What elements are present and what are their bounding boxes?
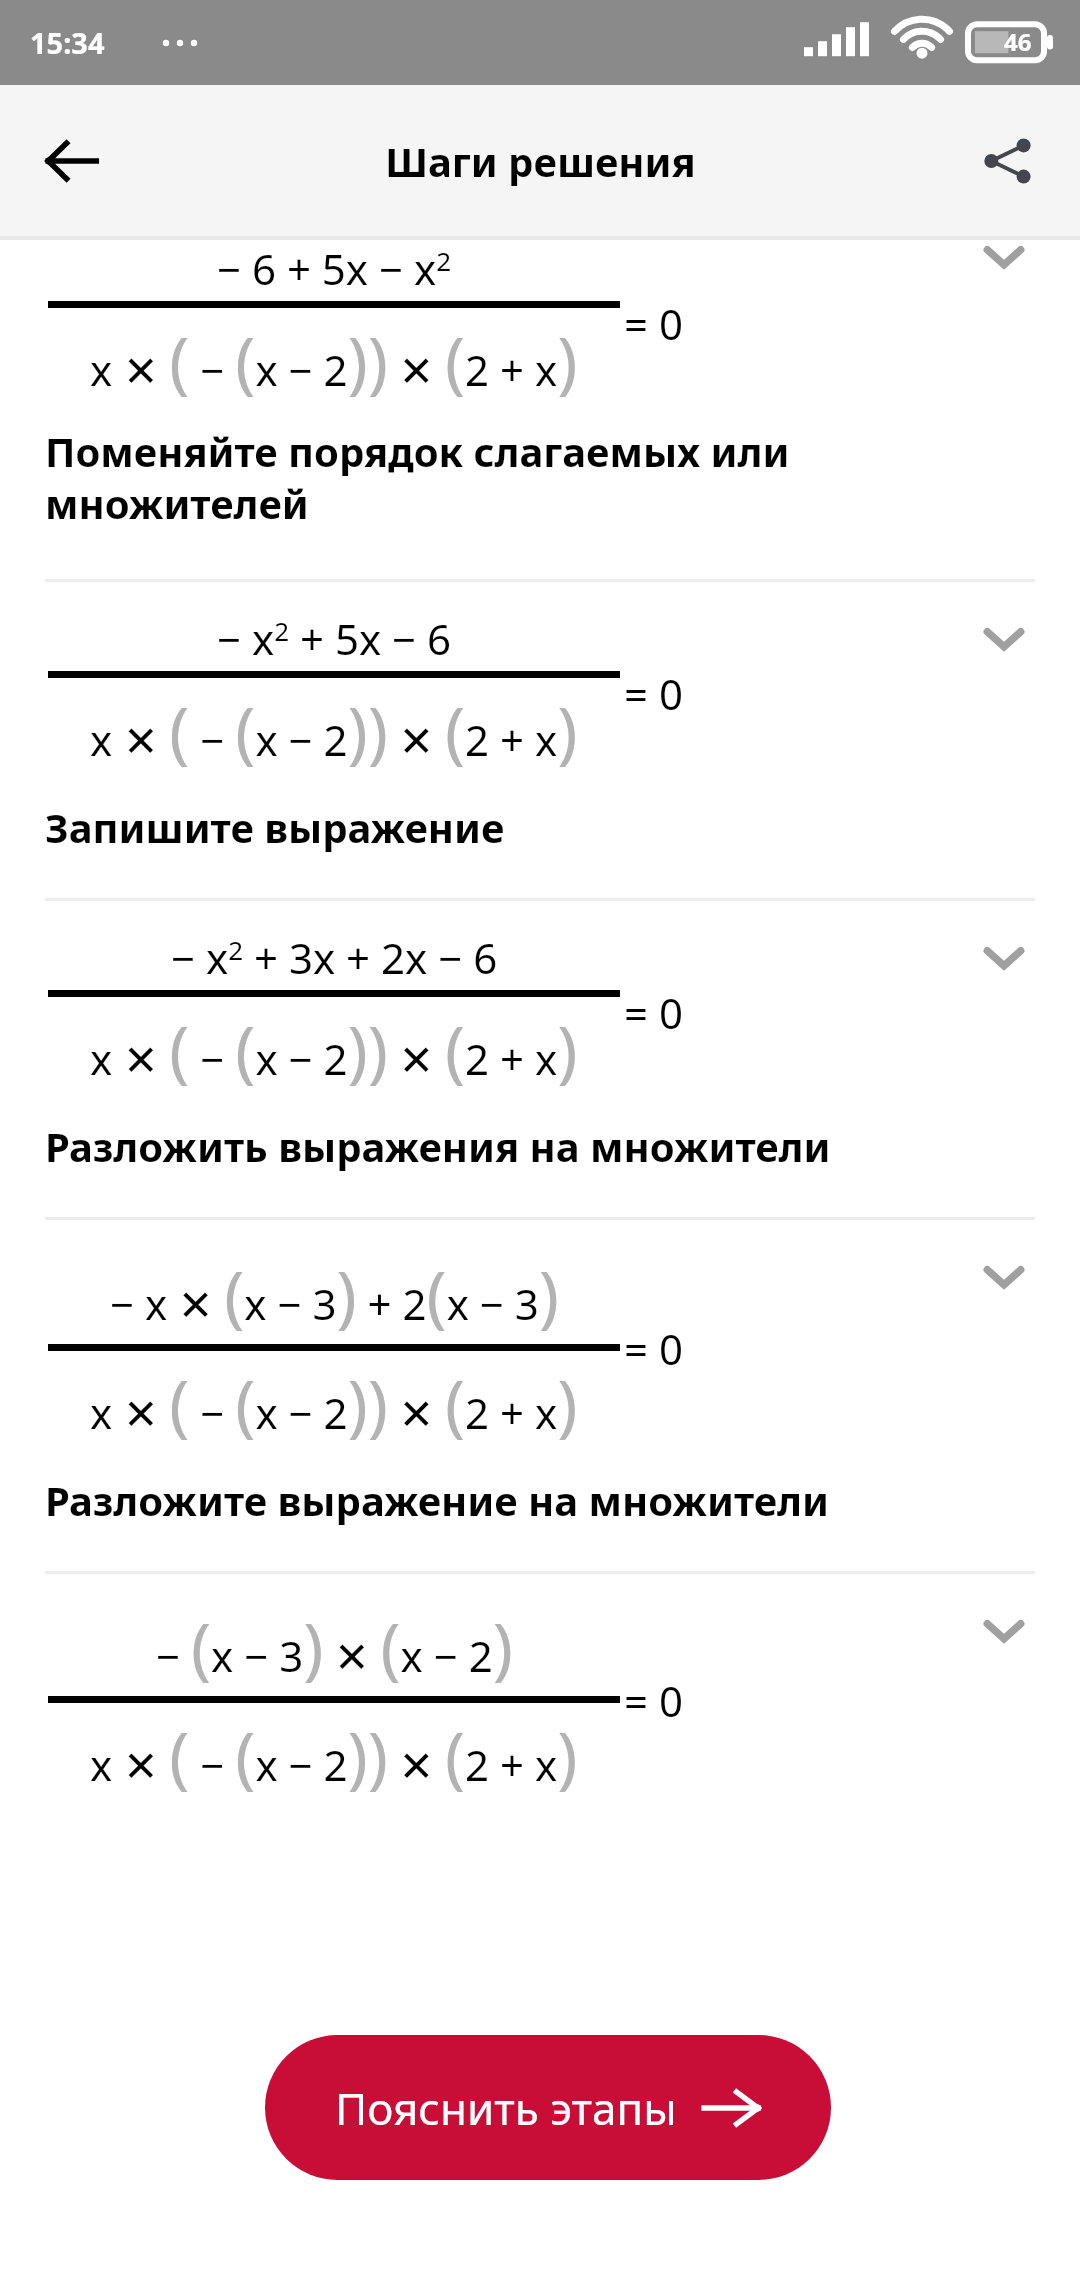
staticText: Запишите выражение xyxy=(45,800,505,854)
staticText: Разложите выражение на множители xyxy=(45,1473,829,1527)
staticText: − x2 + 3x + 2x − 6 xyxy=(171,929,498,986)
staticText: − (x − 3) ✕ (x − 2) xyxy=(156,1600,513,1692)
staticText: x ✕ ( − (x − 2)) ✕ (2 + x) xyxy=(90,1003,578,1095)
button[interactable]: Share xyxy=(962,115,1054,207)
staticText: Разложить выражения на множители xyxy=(45,1119,831,1173)
staticText: = 0 xyxy=(624,295,683,352)
staticText: − 6 + 5x − x2 xyxy=(217,240,452,297)
staticText: Пояснить этапы xyxy=(335,2078,677,2138)
staticText: = 0 xyxy=(624,1672,683,1729)
staticText: = 0 xyxy=(624,1320,683,1377)
button[interactable]: Пояснить этапы xyxy=(265,2035,831,2180)
staticText: Шаги решения xyxy=(385,134,696,188)
staticText: − x ✕ (x − 3) + 2(x − 3) xyxy=(110,1248,559,1340)
button[interactable]: Back xyxy=(26,115,118,207)
staticText: 15:34 xyxy=(30,23,105,62)
button[interactable]: − x ✕ (x − 3) + 2(x − 3) xyxy=(0,1220,1080,1574)
staticText: = 0 xyxy=(624,984,683,1041)
button[interactable]: − 6 + 5x − x2 xyxy=(0,240,1080,582)
button[interactable]: − (x − 3) ✕ (x − 2) xyxy=(48,1600,683,1801)
button[interactable]: − x2 + 5x − 6 xyxy=(0,582,1080,901)
staticText: x ✕ ( − (x − 2)) ✕ (2 + x) xyxy=(90,684,578,776)
staticText: 46 xyxy=(1004,25,1032,58)
staticText: = 0 xyxy=(624,665,683,722)
staticText: x ✕ ( − (x − 2)) ✕ (2 + x) xyxy=(90,314,578,406)
button[interactable]: − x2 + 3x + 2x − 6 xyxy=(0,901,1080,1220)
staticText: − x2 + 5x − 6 xyxy=(217,610,452,667)
staticText: x ✕ ( − (x − 2)) ✕ (2 + x) xyxy=(90,1709,578,1801)
staticText: x ✕ ( − (x − 2)) ✕ (2 + x) xyxy=(90,1357,578,1449)
staticText: Поменяйте порядок слагаемых или множител… xyxy=(45,424,990,531)
